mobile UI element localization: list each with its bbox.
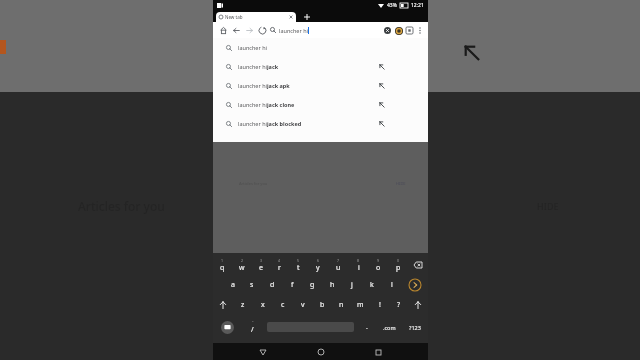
button[interactable]: 9 [368,255,388,275]
staticText: launcher hijack blocked [238,120,411,127]
button[interactable]: 0 [388,255,408,275]
staticText: 9 [377,258,380,263]
button[interactable]: Fill suggestion [377,62,386,71]
staticText: launcher hijack [238,63,411,70]
button[interactable]: g [302,275,322,295]
button[interactable]: 3 [251,255,270,275]
button[interactable]: Forward [243,24,256,37]
staticText: m [357,300,364,310]
button[interactable]: launcher hijack [213,57,428,76]
button[interactable]: New tab [216,12,296,22]
button[interactable]: Emoji [213,315,241,339]
staticText: g [310,280,315,290]
button[interactable]: 5 [289,255,308,275]
button[interactable]: " [241,315,263,339]
staticText: Articles for you [239,181,268,186]
staticText: 4 [278,258,281,263]
staticText: n [339,300,344,310]
button[interactable]: Fill suggestion [377,119,386,128]
staticText: e [259,263,263,273]
staticText: . [366,322,368,332]
button[interactable]: Tabs [404,25,415,36]
button[interactable]: x [253,295,273,315]
button[interactable]: Shift [213,295,233,315]
button[interactable]: ? [389,295,408,315]
button[interactable]: Back [255,344,271,360]
button[interactable]: c [273,295,293,315]
button[interactable]: launcher hi [213,38,428,57]
staticText: 0 [397,258,400,263]
staticText: / [251,325,254,335]
button[interactable]: Account [393,25,404,36]
button[interactable]: New tab [301,11,313,22]
button[interactable]: s [242,275,262,295]
staticText: t [297,263,300,273]
button[interactable]: . [358,315,376,339]
staticText: launcher hi [238,44,420,51]
button[interactable]: Recent apps [370,344,386,360]
button[interactable]: 4 [270,255,289,275]
staticText: launcher hijack clone [238,101,411,108]
staticText: j [351,280,353,290]
staticText: l [391,280,393,290]
button[interactable]: Fill suggestion [377,81,386,90]
button[interactable]: Back [230,24,243,37]
button[interactable]: l [382,275,402,295]
staticText: z [241,300,245,310]
button[interactable]: z [233,295,253,315]
button[interactable]: Fill suggestion [377,100,386,109]
button[interactable]: m [351,295,370,315]
button[interactable]: Home [313,344,329,360]
staticText: .com [383,324,396,331]
staticText: 12:21 [411,2,424,9]
staticText: launcher hijack apk [238,82,411,89]
button[interactable]: launcher hi [270,23,382,37]
button[interactable]: 6 [308,255,328,275]
button[interactable]: Home [217,24,230,37]
button[interactable]: 8 [348,255,368,275]
staticText: 8 [357,258,360,263]
button[interactable]: launcher hijack apk [213,76,428,95]
button[interactable]: launcher hijack clone [213,95,428,114]
button[interactable]: Search [402,275,428,295]
staticText: ? [397,300,401,310]
staticText: x [261,300,265,310]
button[interactable]: ! [370,295,389,315]
button[interactable]: b [313,295,332,315]
button[interactable]: Clear [382,25,393,36]
button[interactable]: ?123 [402,315,428,339]
button[interactable]: a [223,275,242,295]
button[interactable]: k [362,275,382,295]
staticText: v [301,300,305,310]
button[interactable]: Enter [408,295,428,315]
button[interactable]: 1 [213,255,232,275]
staticText: f [291,280,294,290]
staticText: o [376,263,381,273]
staticText: w [239,263,245,273]
button[interactable]: Reload [256,24,269,37]
button[interactable]: n [332,295,351,315]
staticText: 2 [241,258,244,263]
button[interactable]: v [293,295,313,315]
staticText: b [320,300,325,310]
button[interactable]: Close tab [289,15,293,19]
staticText: ! [379,300,381,310]
staticText: 3 [260,258,263,263]
button[interactable]: Backspace [408,255,428,275]
staticText: 6 [317,258,320,263]
button[interactable]: f [282,275,302,295]
button[interactable]: .com [376,315,402,339]
staticText: HIDE [396,181,406,186]
staticText: d [270,280,275,290]
staticText: 43% [387,2,397,9]
button[interactable]: launcher hijack blocked [213,114,428,133]
button[interactable]: h [322,275,342,295]
button[interactable]: d [262,275,282,295]
button[interactable]: 7 [328,255,348,275]
button[interactable]: j [342,275,362,295]
button[interactable]: More options [415,26,424,35]
button[interactable]: 2 [232,255,251,275]
staticText: 7 [337,258,340,263]
